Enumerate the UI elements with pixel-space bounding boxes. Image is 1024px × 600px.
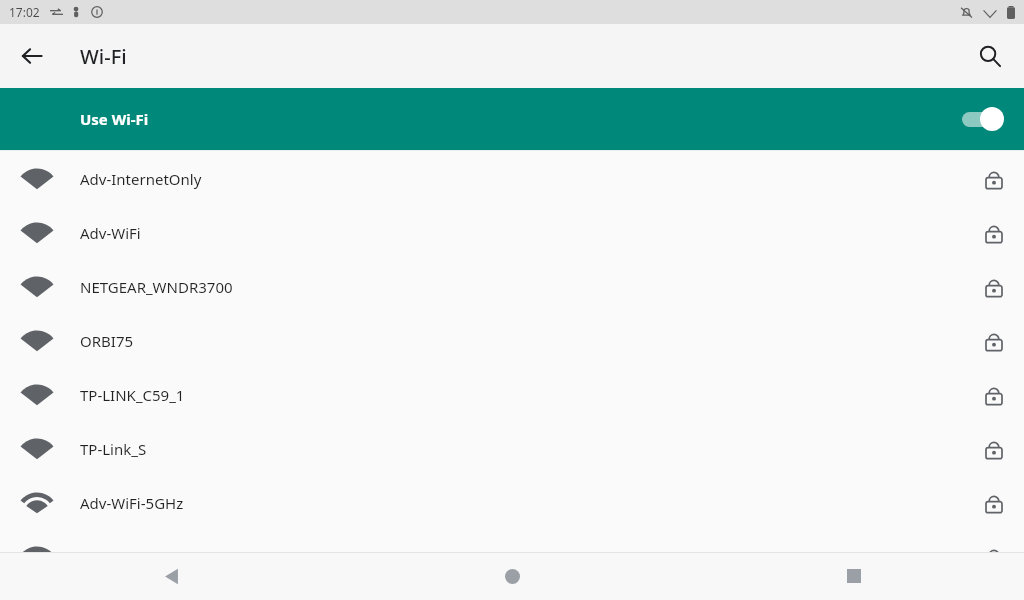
button[interactable]: Adv-WiFi-5GHz bbox=[0, 476, 1024, 530]
staticText: ORBI75 bbox=[80, 331, 134, 351]
staticText: TP-LINK_JJ bbox=[80, 547, 153, 567]
button[interactable]: TP-Link_S bbox=[0, 422, 1024, 476]
button[interactable]: TP-LINK_C59_1 bbox=[0, 368, 1024, 422]
button[interactable]: Search bbox=[968, 34, 1012, 78]
staticText: TP-Link_S bbox=[80, 439, 147, 459]
staticText: TP-LINK_C59_1 bbox=[80, 385, 185, 405]
button[interactable]: Use Wi-Fi bbox=[0, 88, 1024, 150]
button[interactable]: ORBI75 bbox=[0, 314, 1024, 368]
staticText: NETGEAR_WNDR3700 bbox=[80, 277, 233, 297]
button[interactable]: TP-LINK_JJ bbox=[0, 530, 1024, 584]
staticText: Use Wi-Fi bbox=[80, 109, 149, 129]
button[interactable]: Adv-InternetOnly bbox=[0, 152, 1024, 206]
staticText: Adv-WiFi-5GHz bbox=[80, 493, 184, 513]
button[interactable]: Home bbox=[342, 552, 683, 600]
button[interactable]: Recent apps bbox=[683, 552, 1024, 600]
button[interactable]: NETGEAR_WNDR3700 bbox=[0, 260, 1024, 314]
button[interactable]: Adv-WiFi bbox=[0, 206, 1024, 260]
button[interactable]: Back bbox=[0, 552, 342, 600]
button[interactable]: Back bbox=[10, 34, 54, 78]
staticText: Wi-Fi bbox=[80, 43, 127, 70]
staticText: 17:02 bbox=[9, 4, 40, 20]
staticText: Adv-InternetOnly bbox=[80, 169, 202, 189]
staticText: Adv-WiFi bbox=[80, 223, 141, 243]
